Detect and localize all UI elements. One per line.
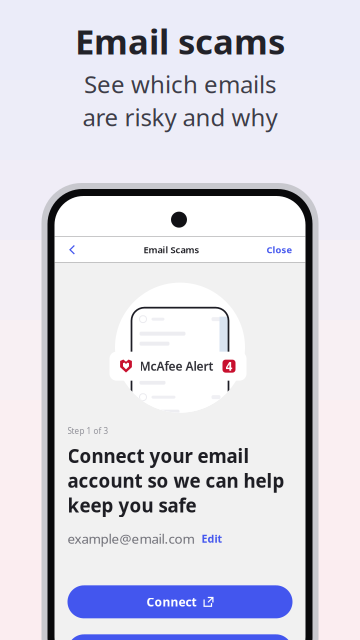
staticText: Edit	[201, 531, 222, 546]
staticText: Email scams	[75, 18, 285, 64]
staticText: Connect your email account so we can hel…	[67, 443, 284, 518]
staticText: 4	[225, 358, 232, 374]
staticText: Connect	[146, 594, 196, 610]
staticText: Email Scams	[143, 243, 199, 256]
staticText: See which emails	[84, 68, 276, 100]
staticText: McAfee Alert	[139, 358, 213, 374]
staticText: are risky and why	[82, 101, 277, 133]
staticText: example@email.com	[67, 530, 194, 547]
button[interactable]: Connect	[67, 585, 292, 618]
button[interactable]: Skip	[67, 634, 292, 640]
staticText: Step 1 of 3	[67, 426, 108, 436]
staticText: Close	[266, 243, 292, 256]
button[interactable]: Back	[62, 239, 81, 260]
button[interactable]: Close	[261, 238, 297, 261]
button[interactable]: Edit	[201, 531, 222, 546]
